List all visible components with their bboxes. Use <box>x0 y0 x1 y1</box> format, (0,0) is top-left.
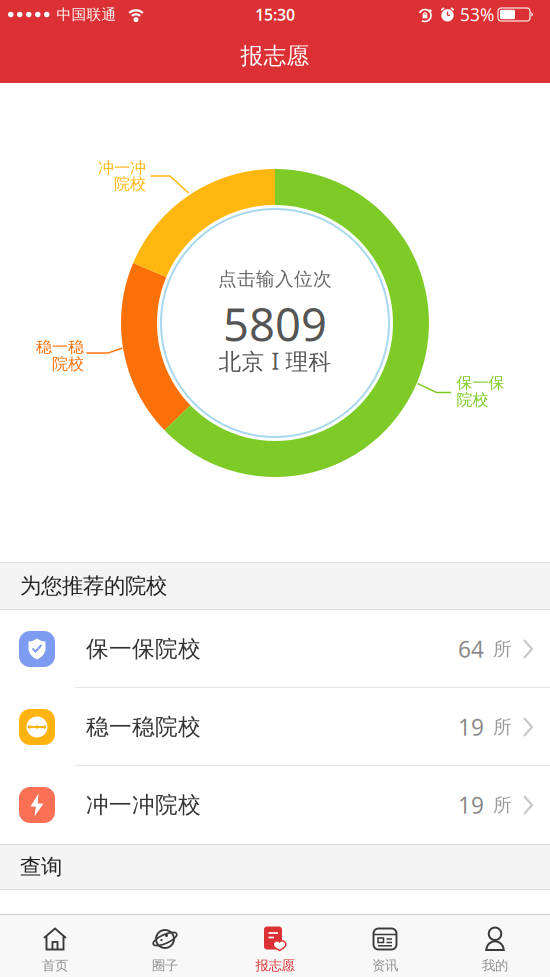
staticText: 报志愿 <box>240 42 309 70</box>
button[interactable]: 圈子 <box>110 915 220 977</box>
staticText: 15:30 <box>255 4 295 25</box>
staticText: 查询 <box>20 854 62 880</box>
staticText: 院校 <box>52 354 84 374</box>
staticText: 稳一稳院校 <box>86 713 201 741</box>
staticText: 所 <box>493 793 512 816</box>
button[interactable]: 保一保院校 <box>0 610 550 688</box>
staticText: 稳一稳 <box>36 337 84 357</box>
staticText: 53% <box>460 3 494 26</box>
staticText: 北京 I 理科 <box>218 346 331 376</box>
staticText: 我的 <box>482 957 508 974</box>
button[interactable]: 点击输入位次 <box>0 83 550 562</box>
staticText: 19 <box>458 712 484 742</box>
staticText: 院校 <box>114 174 146 194</box>
staticText: 首页 <box>42 957 68 974</box>
staticText: 冲一冲 <box>98 158 146 178</box>
staticText: 点击输入位次 <box>218 267 332 290</box>
staticText: 资讯 <box>372 957 398 974</box>
staticText: 为您推荐的院校 <box>20 573 167 599</box>
staticText: 中国联通 <box>56 5 116 23</box>
staticText: 所 <box>493 715 512 738</box>
button[interactable]: 稳一稳院校 <box>0 688 550 766</box>
staticText: 冲一冲院校 <box>86 791 201 819</box>
staticText: 所 <box>493 637 512 660</box>
button[interactable]: 首页 <box>0 915 110 977</box>
staticText: 院校 <box>456 390 488 410</box>
button[interactable]: 报志愿 <box>220 915 330 977</box>
staticText: 圈子 <box>152 957 178 974</box>
staticText: 5809 <box>223 294 327 354</box>
button[interactable]: 我的 <box>440 915 550 977</box>
staticText: 保一保 <box>456 373 504 393</box>
button[interactable]: 资讯 <box>330 915 440 977</box>
staticText: 报志愿 <box>255 957 294 974</box>
staticText: 64 <box>458 634 484 664</box>
staticText: 19 <box>458 790 484 820</box>
staticText: 保一保院校 <box>86 635 201 663</box>
button[interactable]: 冲一冲院校 <box>0 766 550 844</box>
